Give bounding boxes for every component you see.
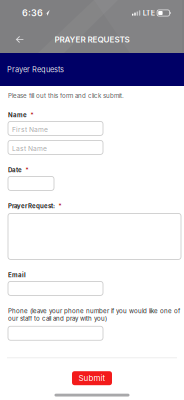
staticText: Prayer Request:: [8, 202, 55, 210]
staticText: *: [25, 166, 28, 174]
staticText: 6:36: [22, 7, 43, 18]
staticText: *: [58, 202, 61, 210]
staticText: Phone (leave your phone number if you wo…: [8, 307, 180, 322]
staticText: PRAYER REQUESTS: [54, 35, 129, 44]
staticText: First Name: [12, 126, 48, 134]
staticText: LTE: [143, 9, 155, 17]
staticText: Submit: [78, 373, 105, 383]
staticText: *: [30, 111, 33, 119]
button[interactable]: Submit: [72, 371, 112, 385]
staticText: Name: [8, 111, 27, 119]
staticText: Prayer Requests: [7, 65, 64, 74]
staticText: Email: [8, 271, 26, 279]
staticText: Please fill out this form and click subm…: [8, 92, 124, 99]
button[interactable]: Back: [4, 26, 34, 52]
staticText: Date: [8, 166, 22, 174]
staticText: Last Name: [12, 145, 47, 153]
